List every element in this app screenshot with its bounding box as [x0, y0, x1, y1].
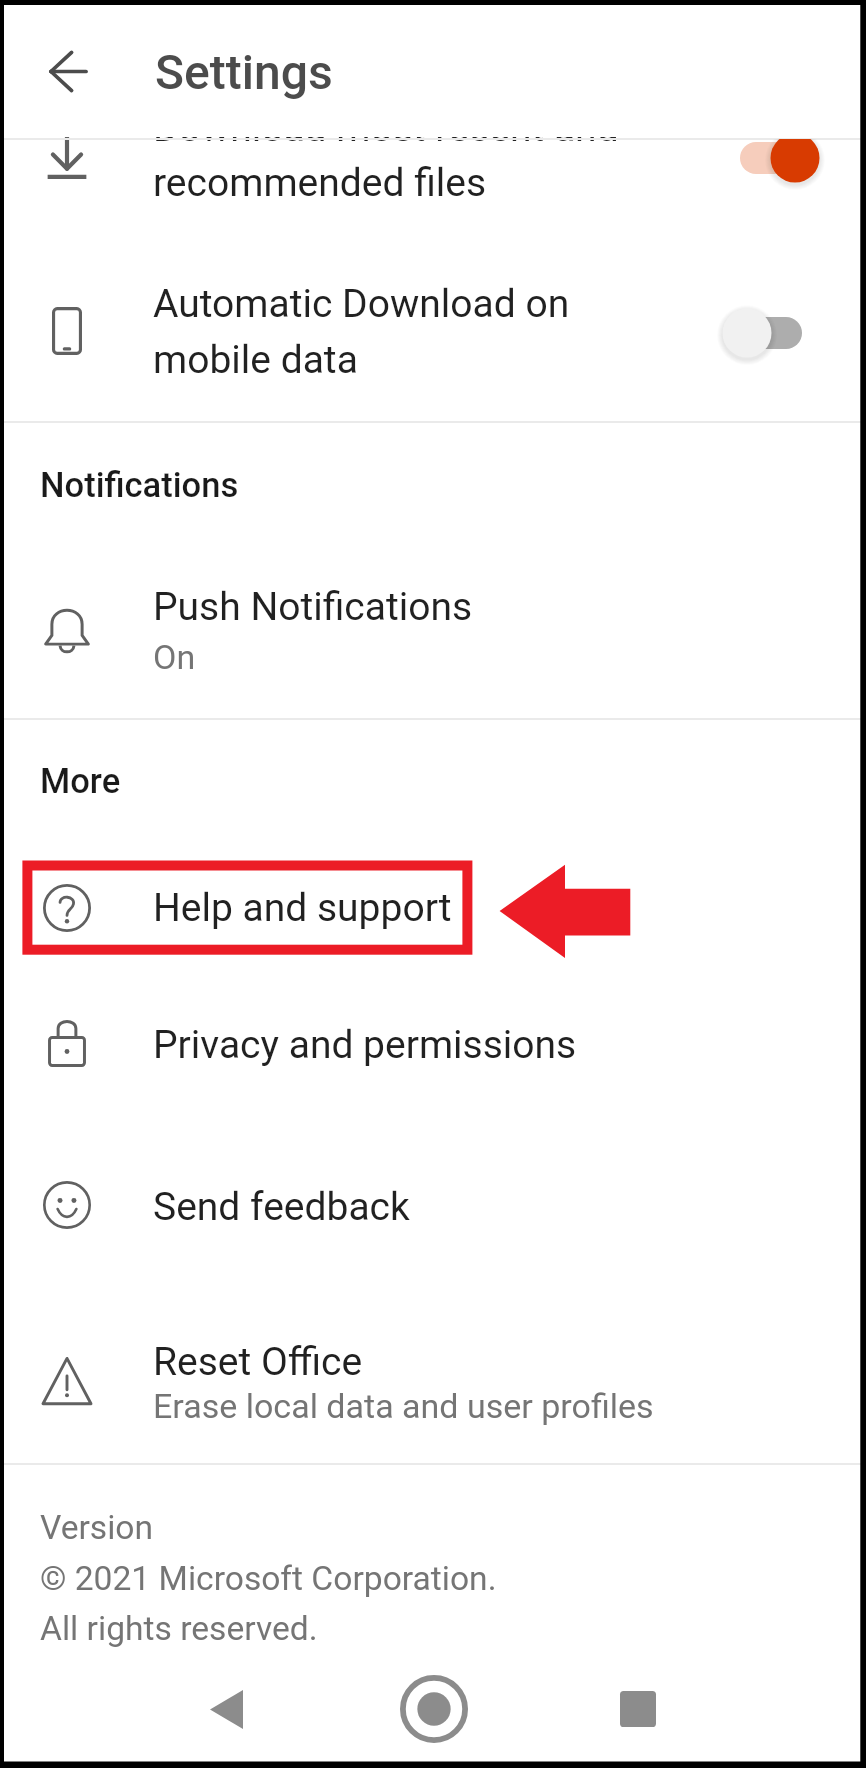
staticText: Help and support: [153, 885, 452, 931]
button[interactable]: [0, 139, 866, 277]
button[interactable]: Automatic download on mobile data, off: [720, 298, 830, 368]
staticText: Download most recent and recommended fil…: [153, 105, 619, 206]
button[interactable]: [0, 1150, 866, 1290]
staticText: Push Notifications: [153, 584, 473, 630]
button[interactable]: [0, 840, 866, 976]
staticText: © 2021 Microsoft Corporation.: [40, 1559, 497, 1598]
button[interactable]: Home: [383, 1655, 484, 1763]
button[interactable]: Back: [176, 1655, 277, 1763]
button[interactable]: Recent apps: [587, 1655, 688, 1763]
button[interactable]: [0, 545, 866, 718]
staticText: Erase local data and user profiles: [153, 1386, 654, 1426]
staticText: Automatic Download on mobile data: [153, 281, 570, 383]
staticText: Reset Office: [153, 1339, 363, 1385]
staticText: Version: [40, 1508, 154, 1547]
staticText: Settings: [155, 44, 333, 100]
staticText: Privacy and permissions: [153, 1022, 577, 1068]
staticText: Notifications: [40, 465, 239, 505]
button[interactable]: [0, 990, 866, 1126]
button[interactable]: Download most recent and recommended fil…: [720, 139, 830, 193]
staticText: On: [153, 637, 196, 677]
staticText: All rights reserved.: [40, 1609, 318, 1648]
button[interactable]: [0, 1300, 866, 1440]
button[interactable]: Navigate up: [24, 27, 112, 115]
staticText: More: [40, 761, 121, 801]
staticText: Send feedback: [153, 1184, 410, 1230]
button[interactable]: [0, 277, 866, 421]
